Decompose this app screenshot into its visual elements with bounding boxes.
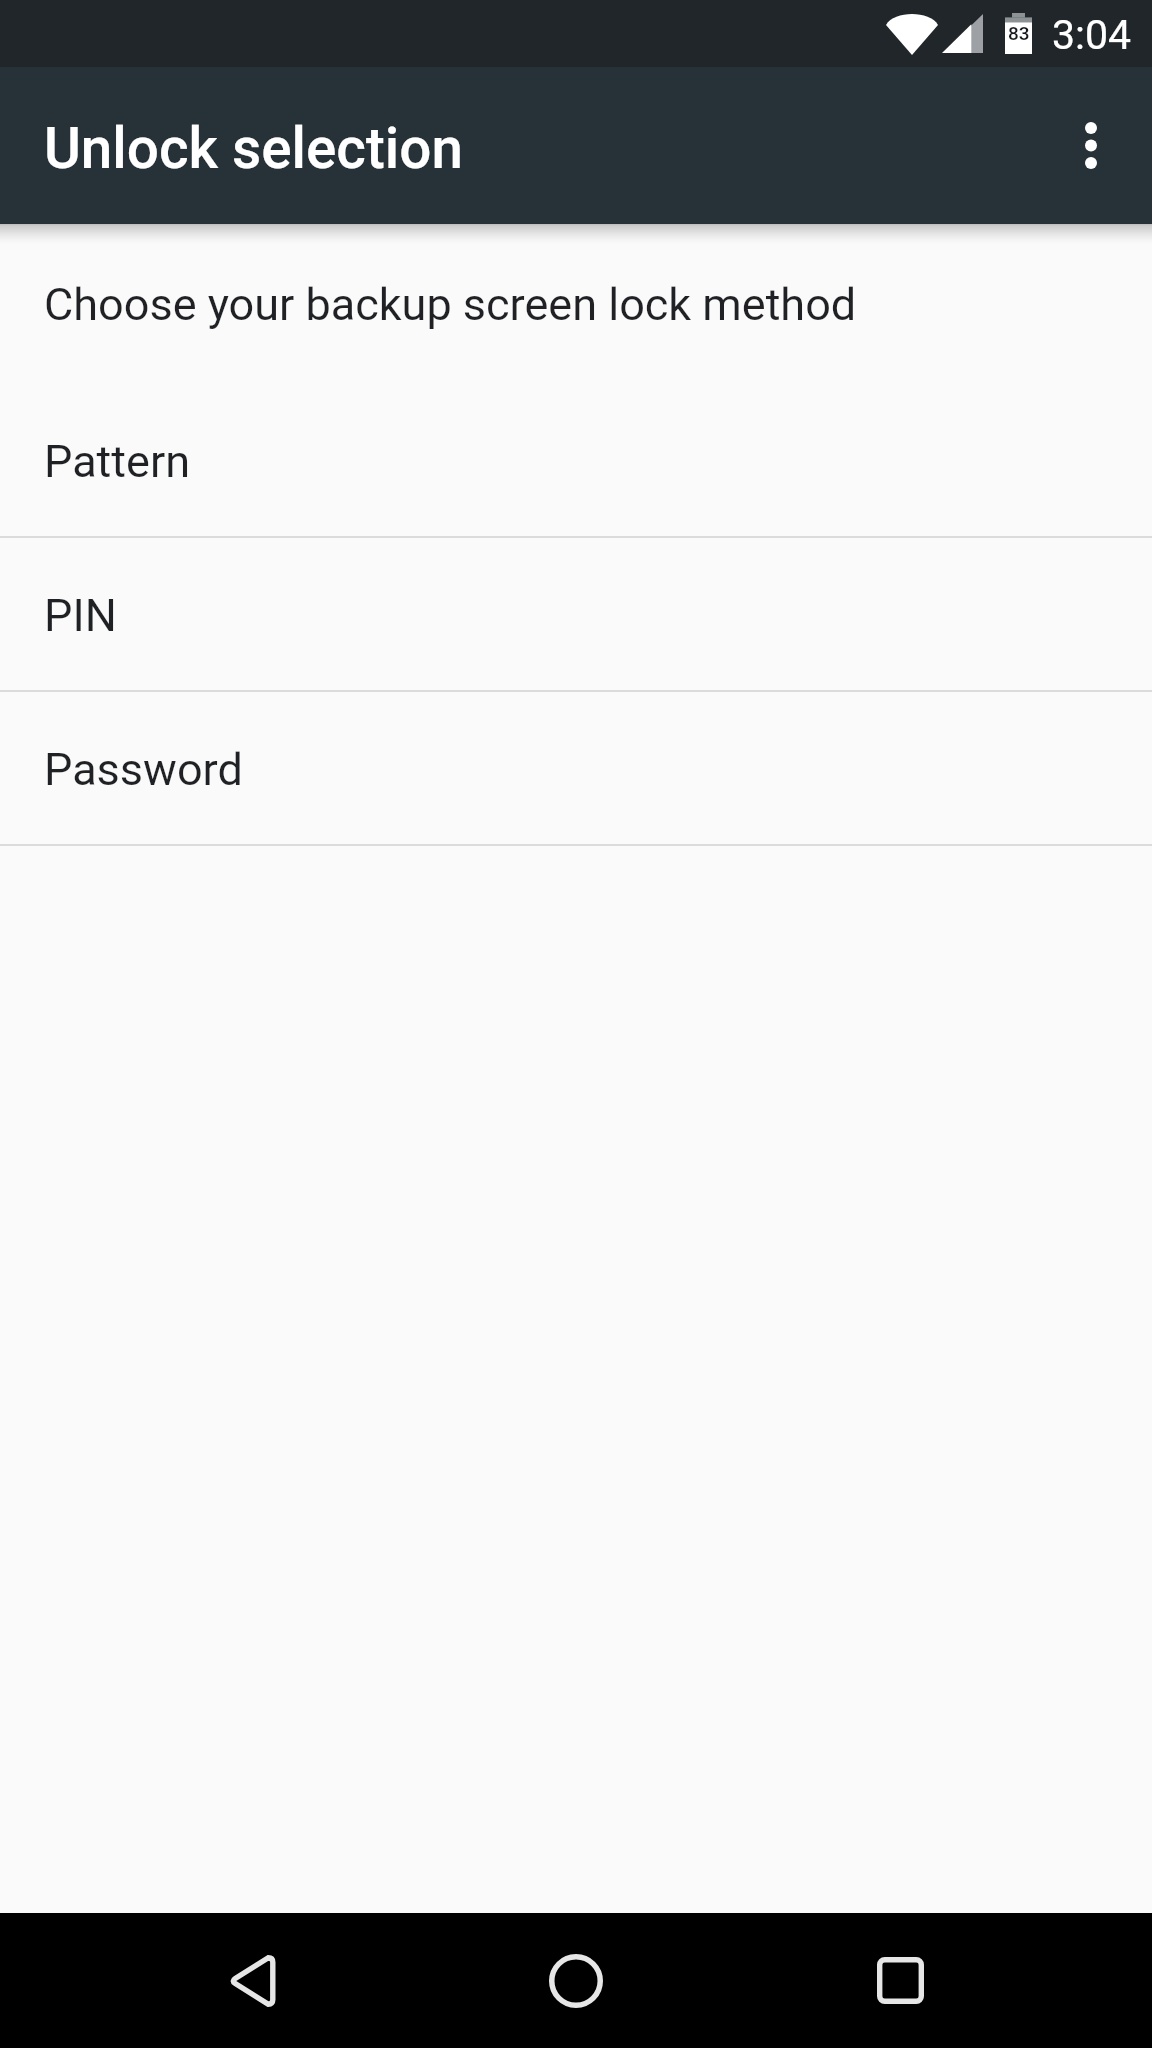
button[interactable]: Password [0, 692, 1152, 844]
staticText: 83 [1008, 22, 1030, 44]
button[interactable]: PIN [0, 538, 1152, 690]
staticText: PIN [44, 589, 117, 642]
button[interactable]: Back [181, 1913, 325, 2048]
staticText: Password [44, 743, 243, 796]
staticText: Choose your backup screen lock method [44, 278, 857, 331]
button[interactable]: Recent apps [828, 1913, 972, 2048]
staticText: Unlock selection [44, 116, 463, 182]
button[interactable]: More options [1020, 67, 1152, 224]
staticText: Pattern [44, 435, 191, 488]
button[interactable]: Home [504, 1913, 648, 2048]
staticText: 3:04 [1052, 11, 1132, 59]
button[interactable]: Pattern [0, 384, 1152, 536]
